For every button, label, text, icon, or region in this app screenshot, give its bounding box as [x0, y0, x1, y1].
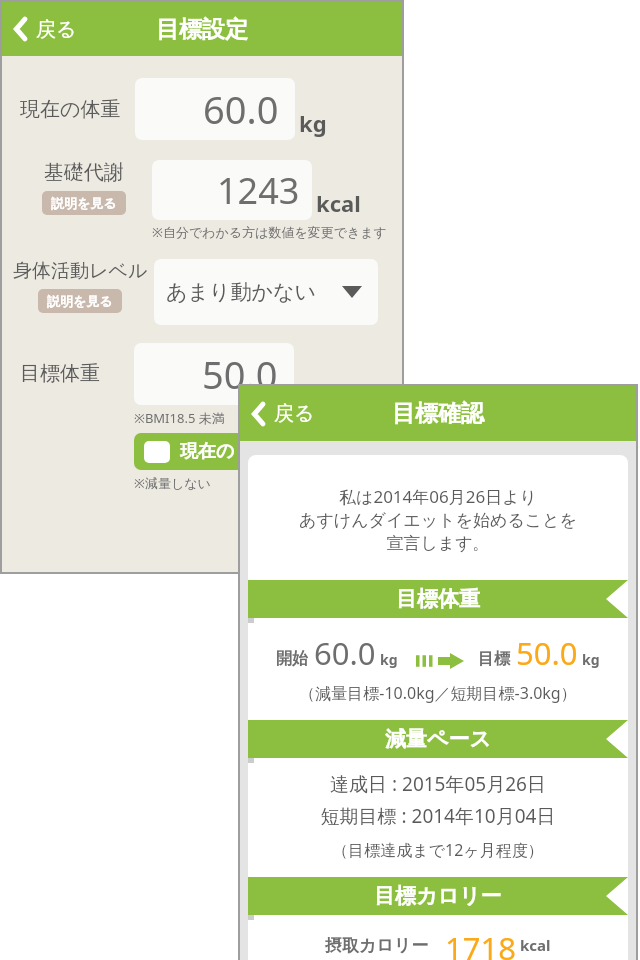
staticText: kcal: [520, 935, 551, 955]
staticText: 50.0: [516, 632, 578, 674]
button[interactable]: 戻る: [2, 2, 85, 56]
staticText: 目標設定: [156, 15, 248, 44]
staticText: kg: [380, 650, 398, 669]
button[interactable]: 説明を見る: [42, 191, 126, 215]
staticText: 1243: [217, 166, 300, 215]
staticText: 摂取カロリー: [325, 935, 429, 956]
staticText: 戻る: [274, 401, 315, 426]
staticText: 達成日 : 2015年05月26日: [248, 771, 628, 797]
staticText: 50.0: [202, 348, 278, 400]
staticText: ※BMI18.5 未満: [134, 409, 225, 427]
button[interactable]: 説明を見る: [38, 289, 122, 313]
button[interactable]: 60.0: [135, 78, 295, 140]
staticText: 現在の: [180, 440, 235, 463]
staticText: 現在の体重: [20, 97, 121, 122]
staticText: 開始: [276, 649, 308, 669]
staticText: kcal: [316, 188, 361, 218]
button[interactable]: 50.0: [134, 343, 294, 405]
staticText: 身体活動レベル: [13, 259, 148, 283]
staticText: 目標カロリー: [374, 883, 502, 909]
staticText: 目標体重: [20, 361, 100, 386]
button[interactable]: 戻る: [240, 386, 323, 441]
staticText: kg: [582, 650, 600, 669]
staticText: ※自分でわかる方は数値を変更できます: [152, 223, 387, 241]
staticText: 短期目標 : 2014年10月04日: [248, 803, 628, 829]
staticText: 60.0: [314, 632, 376, 674]
staticText: 基礎代謝: [44, 160, 124, 185]
staticText: 私は2014年06月26日より あすけんダイエットを始めることを 宣言します。: [254, 485, 622, 554]
button[interactable]: あまり動かない: [154, 259, 378, 325]
staticText: ※減量しない: [134, 474, 211, 492]
staticText: 目標: [478, 649, 510, 669]
staticText: 減量ペース: [385, 726, 491, 752]
staticText: （減量目標-10.0kg／短期目標-3.0kg）: [248, 682, 628, 704]
staticText: 説明を見る: [51, 195, 117, 211]
staticText: 目標確認: [392, 399, 484, 428]
staticText: 説明を見る: [47, 293, 113, 309]
staticText: kg: [299, 108, 327, 138]
staticText: 1718: [445, 927, 516, 960]
staticText: あまり動かない: [166, 279, 316, 305]
button[interactable]: 現在の: [134, 433, 245, 470]
staticText: 60.0: [203, 83, 279, 135]
staticText: 目標体重: [396, 586, 480, 612]
staticText: 戻る: [36, 17, 77, 42]
staticText: （目標達成まで12ヶ月程度）: [248, 839, 628, 861]
button[interactable]: 1243: [152, 160, 312, 220]
